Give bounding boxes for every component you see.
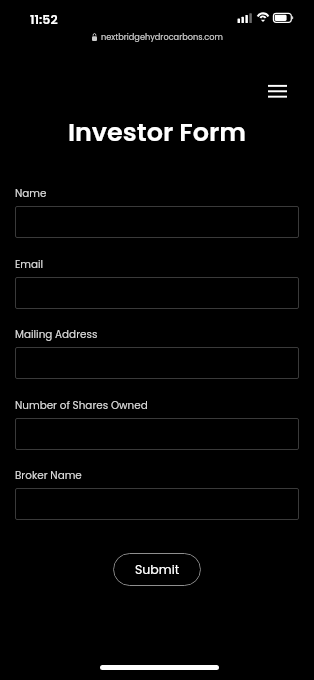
staticText: Mailing Address: [15, 327, 98, 342]
button[interactable]: [15, 347, 299, 379]
staticText: Investor Form: [0, 114, 314, 150]
staticText: Submit: [135, 561, 180, 578]
staticText: Broker Name: [15, 468, 82, 483]
staticText: Number of Shares Owned: [15, 398, 148, 413]
button[interactable]: [15, 206, 299, 238]
staticText: 11:52: [30, 11, 58, 28]
staticText: Email: [15, 257, 44, 272]
button[interactable]: Submit: [113, 553, 201, 586]
staticText: nextbridgehydrocarbons.com: [101, 31, 223, 42]
button[interactable]: Open menu: [262, 75, 292, 103]
button[interactable]: [15, 277, 299, 309]
button[interactable]: [15, 488, 299, 520]
staticText: Name: [15, 186, 47, 201]
other: Signal, wifi and battery status: [230, 8, 300, 26]
button[interactable]: [15, 418, 299, 450]
button[interactable]: nextbridgehydrocarbons.com: [0, 29, 314, 44]
